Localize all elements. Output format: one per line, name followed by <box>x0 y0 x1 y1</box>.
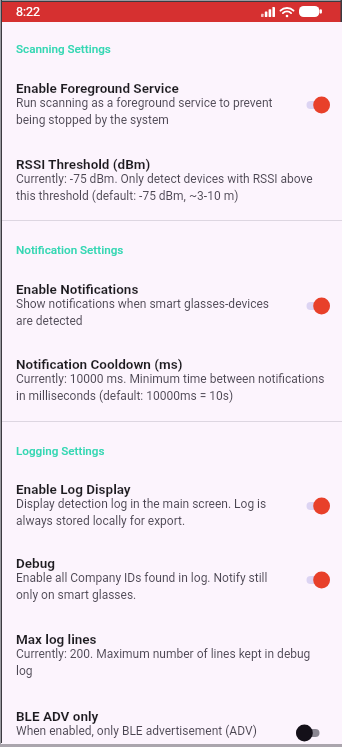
staticText: RSSI Threshold (dBm) <box>16 156 151 172</box>
button[interactable]: BLE ADV only <box>0 708 342 742</box>
button[interactable]: Toggle setting <box>296 497 330 515</box>
staticText: Notification Cooldown (ms) <box>16 356 183 372</box>
staticText: Currently: 200. Maximum number of lines … <box>16 644 327 678</box>
staticText: Currently: -75 dBm. Only detect devices … <box>16 169 327 203</box>
button[interactable]: RSSI Threshold (dBm) <box>0 156 342 206</box>
staticText: Run scanning as a foreground service to … <box>16 93 286 127</box>
staticText: Debug <box>16 555 55 571</box>
staticText: Currently: 10000 ms. Minimum time betwee… <box>16 369 327 403</box>
staticText: Notification Settings <box>16 244 342 257</box>
staticText: Enable Foreground Service <box>16 80 179 96</box>
staticText: Logging Settings <box>16 445 342 458</box>
button[interactable]: Toggle setting <box>296 724 330 742</box>
staticText: When enabled, only BLE advertisement (AD… <box>16 721 257 738</box>
staticText: Show notifications when smart glasses-de… <box>16 294 286 328</box>
staticText: Max log lines <box>16 631 97 647</box>
button[interactable]: Enable Notifications <box>0 281 342 331</box>
staticText: Scanning Settings <box>16 43 342 56</box>
button[interactable]: Toggle setting <box>296 297 330 315</box>
staticText: Enable Notifications <box>16 281 139 297</box>
button[interactable]: Enable Log Display <box>0 481 342 531</box>
other: Wi-Fi connected <box>280 7 294 17</box>
staticText: BLE ADV only <box>16 708 99 724</box>
button[interactable]: Toggle setting <box>296 571 330 589</box>
button[interactable]: Notification Cooldown (ms) <box>0 356 342 406</box>
staticText: Enable Log Display <box>16 481 131 497</box>
other: Battery full <box>299 6 322 17</box>
other: Mobile signal strength <box>261 7 275 17</box>
staticText: 8:22 <box>16 4 41 19</box>
staticText: Enable all Company IDs found in log. Not… <box>16 568 286 602</box>
button[interactable]: Debug <box>0 555 342 605</box>
button[interactable]: Enable Foreground Service <box>0 80 342 130</box>
staticText: Display detection log in the main screen… <box>16 494 286 528</box>
button[interactable]: Toggle setting <box>296 96 330 114</box>
button[interactable]: Max log lines <box>0 631 342 681</box>
